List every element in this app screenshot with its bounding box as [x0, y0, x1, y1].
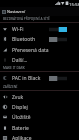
staticText: Nastavení	[7, 9, 26, 14]
staticText: Aplikace	[12, 135, 32, 140]
staticText: MAKE IT DARK	[3, 66, 25, 70]
button[interactable]: Bluetooth	[0, 34, 79, 44]
button[interactable]: Displej	[0, 102, 79, 112]
staticText: Další...	[12, 57, 28, 64]
button[interactable]: Přenesená data	[0, 45, 79, 55]
staticText: Wi-Fi	[12, 26, 24, 33]
button[interactable]: Nastavení	[0, 7, 79, 16]
button[interactable]: PAC in Black	[0, 73, 79, 83]
button[interactable]: Baterie	[0, 123, 79, 133]
staticText: Displej	[12, 104, 28, 111]
staticText: ZAŘÍZENÍ	[3, 85, 18, 89]
staticText: BEZDRÁTOVÁ PŘIPOJENÍ A SÍTĚ	[3, 17, 50, 21]
button[interactable]: Aplikace	[0, 133, 79, 140]
button[interactable]: Úložiště	[0, 112, 79, 122]
staticText: Přenesená data	[12, 47, 49, 54]
staticText: PAC in Black	[12, 75, 41, 82]
button[interactable]: Další...	[0, 55, 79, 65]
staticText: Úložiště	[12, 114, 31, 121]
button[interactable]: Zvuk	[0, 92, 79, 102]
button[interactable]: On	[49, 27, 67, 32]
staticText: Bluetooth	[12, 36, 36, 43]
button[interactable]: Off	[49, 76, 67, 81]
button[interactable]: Off	[49, 37, 67, 42]
button[interactable]: Wi-Fi	[0, 24, 79, 34]
staticText: Zvuk	[12, 94, 24, 101]
staticText: Baterie	[12, 125, 29, 132]
staticText: 15:58	[69, 1, 79, 7]
